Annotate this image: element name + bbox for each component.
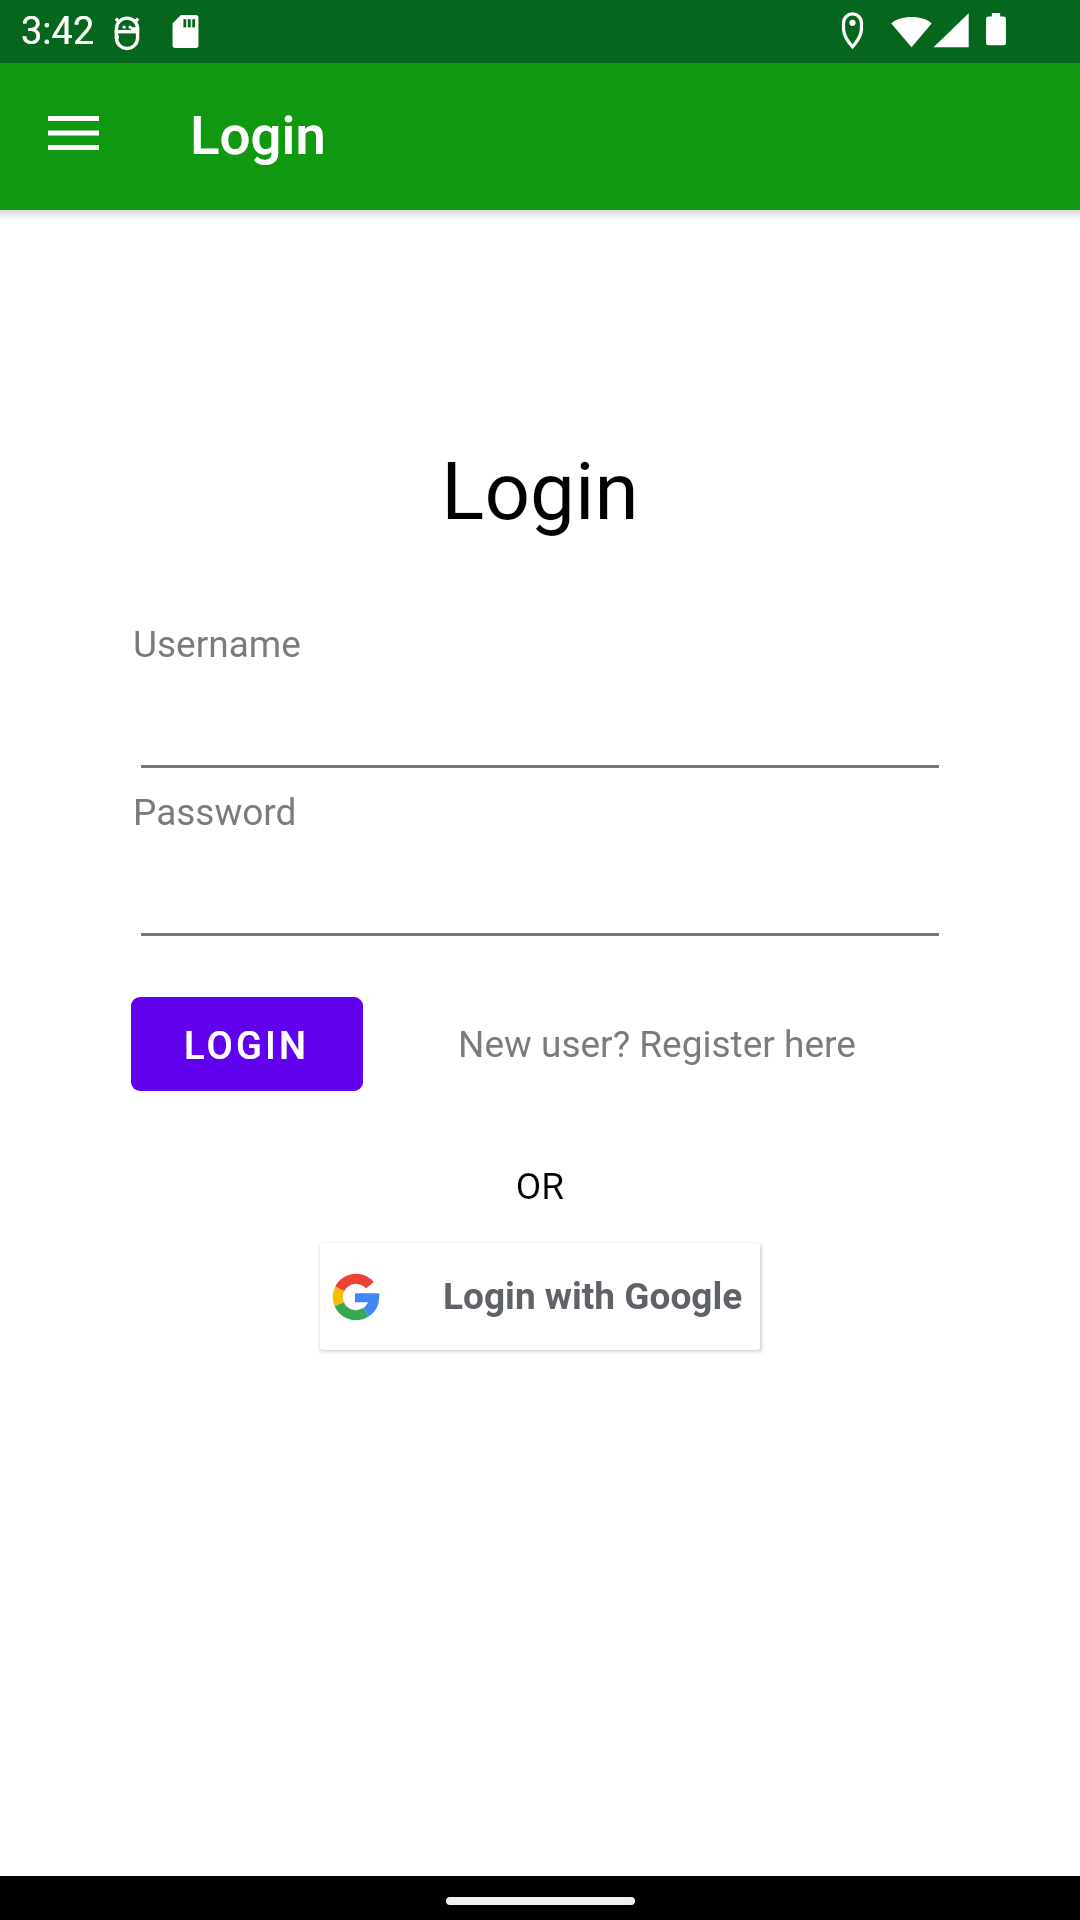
staticText: New user? Register here [458, 1023, 856, 1066]
staticText: Username [133, 623, 301, 666]
button[interactable]: Login with Google [320, 1243, 760, 1350]
button[interactable]: Open navigation menu [23, 83, 123, 183]
staticText: 3:42 [21, 9, 95, 54]
button[interactable]: New user? Register here [458, 1023, 856, 1066]
staticText: LOGIN [184, 1024, 310, 1069]
staticText: Password [133, 791, 297, 834]
staticText: Login with Google [443, 1275, 743, 1318]
staticText: Login [190, 103, 326, 167]
button[interactable]: LOGIN [131, 997, 363, 1091]
staticText: OR [0, 1165, 1080, 1208]
staticText: Login [0, 445, 1080, 539]
